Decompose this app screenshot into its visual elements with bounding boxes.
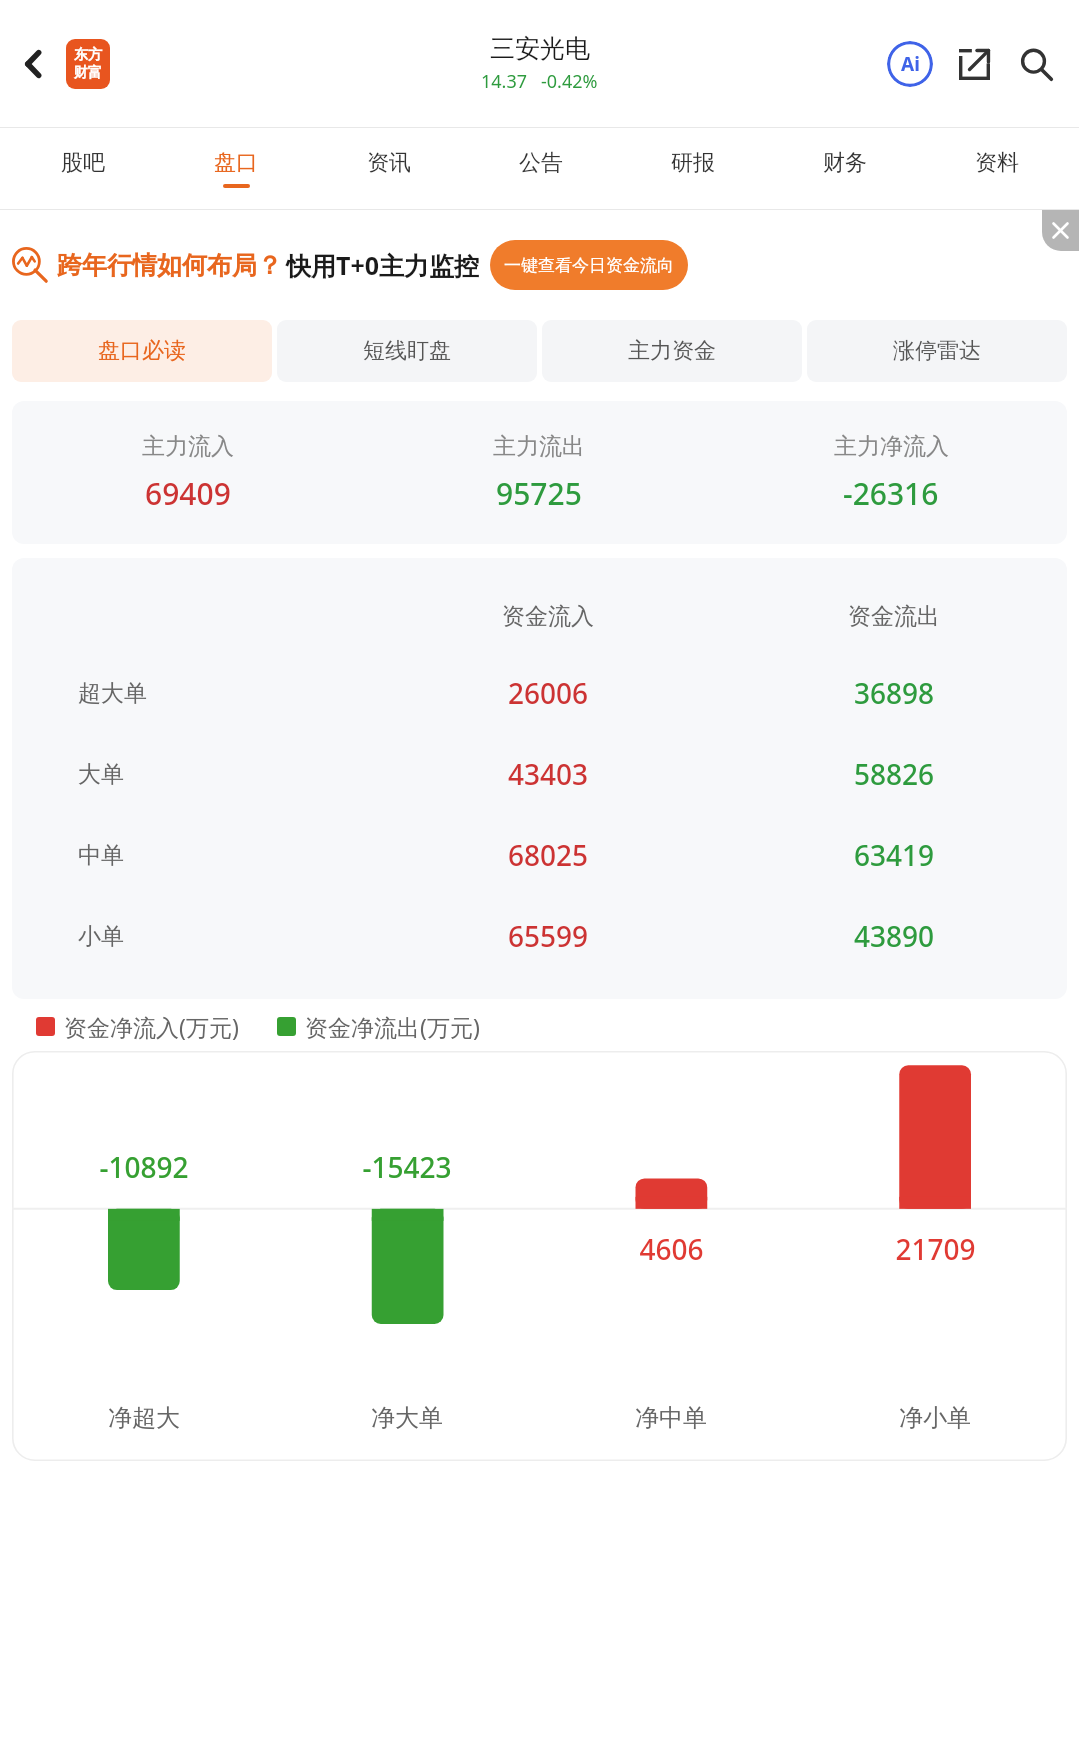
staticText: 主力流出 [493, 432, 585, 461]
button[interactable]: Share [945, 35, 1003, 93]
staticText: 36898 [854, 674, 935, 712]
staticText: Ai [901, 51, 920, 77]
staticText: -0.42% [541, 69, 598, 94]
staticText: 研报 [671, 149, 715, 177]
staticText: 财富 [74, 64, 102, 82]
staticText: 东方 [74, 46, 102, 64]
button[interactable]: 涨停雷达 [807, 320, 1067, 382]
button[interactable]: 公告 [465, 128, 617, 209]
staticText: 涨停雷达 [893, 337, 981, 365]
button[interactable]: East Money [66, 39, 110, 89]
button[interactable]: AI [881, 35, 939, 93]
staticText: -26316 [843, 473, 939, 514]
button[interactable]: 盘口必读 [12, 320, 272, 382]
staticText: 净大单 [371, 1403, 443, 1433]
staticText: 资金流出 [848, 602, 940, 631]
button[interactable]: 跨年行情如何布局？ [12, 240, 1031, 290]
staticText: 43890 [854, 917, 935, 955]
staticText: 净中单 [635, 1403, 707, 1433]
staticText: 主力净流入 [834, 432, 949, 461]
staticText: 短线盯盘 [363, 337, 451, 365]
staticText: 65599 [508, 917, 589, 955]
button[interactable]: Search [1007, 35, 1065, 93]
staticText: 三安光电 [490, 33, 590, 64]
button[interactable]: Back [6, 36, 62, 92]
staticText: 一键查看今日资金流向 [504, 255, 674, 276]
staticText: 净小单 [899, 1403, 971, 1433]
staticText: 大单 [78, 760, 124, 789]
staticText: 43403 [508, 755, 589, 793]
staticText: 盘口必读 [98, 337, 186, 365]
staticText: 超大单 [78, 679, 147, 708]
button[interactable]: 股吧 [6, 128, 159, 209]
staticText: 69409 [145, 473, 231, 514]
staticText: 股吧 [61, 149, 105, 177]
staticText: 主力流入 [142, 432, 234, 461]
button[interactable]: 资料 [921, 128, 1073, 209]
button[interactable]: Close [1042, 210, 1079, 251]
staticText: 中单 [78, 841, 124, 870]
staticText: 资金流入 [502, 602, 594, 631]
staticText: 资讯 [367, 149, 411, 177]
staticText: 4606 [639, 1230, 704, 1268]
staticText: 公告 [519, 149, 563, 177]
staticText: 21709 [895, 1230, 976, 1268]
staticText: 63419 [854, 836, 935, 874]
staticText: 26006 [508, 674, 589, 712]
button[interactable]: 短线盯盘 [277, 320, 537, 382]
staticText: -10892 [99, 1148, 189, 1186]
button[interactable]: 资讯 [312, 128, 465, 209]
staticText: 净超大 [108, 1403, 180, 1433]
staticText: -15423 [362, 1148, 452, 1186]
staticText: 95725 [496, 473, 582, 514]
staticText: 跨年行情如何布局？ [57, 250, 282, 281]
button[interactable]: 盘口 [159, 128, 312, 209]
button[interactable]: 财务 [769, 128, 921, 209]
staticText: 财务 [823, 149, 867, 177]
staticText: 主力资金 [628, 337, 716, 365]
button[interactable]: 主力资金 [542, 320, 802, 382]
staticText: 盘口 [214, 149, 258, 177]
staticText: 资料 [975, 149, 1019, 177]
staticText: 58826 [854, 755, 935, 793]
staticText: 资金净流出(万元) [305, 1011, 480, 1042]
button[interactable]: 研报 [617, 128, 769, 209]
staticText: 快用T+0主力监控 [286, 248, 480, 282]
staticText: 资金净流入(万元) [64, 1011, 239, 1042]
button[interactable]: 一键查看今日资金流向 [504, 240, 674, 290]
staticText: 68025 [508, 836, 589, 874]
staticText: 小单 [78, 922, 124, 951]
staticText: 14.37 [481, 69, 528, 94]
